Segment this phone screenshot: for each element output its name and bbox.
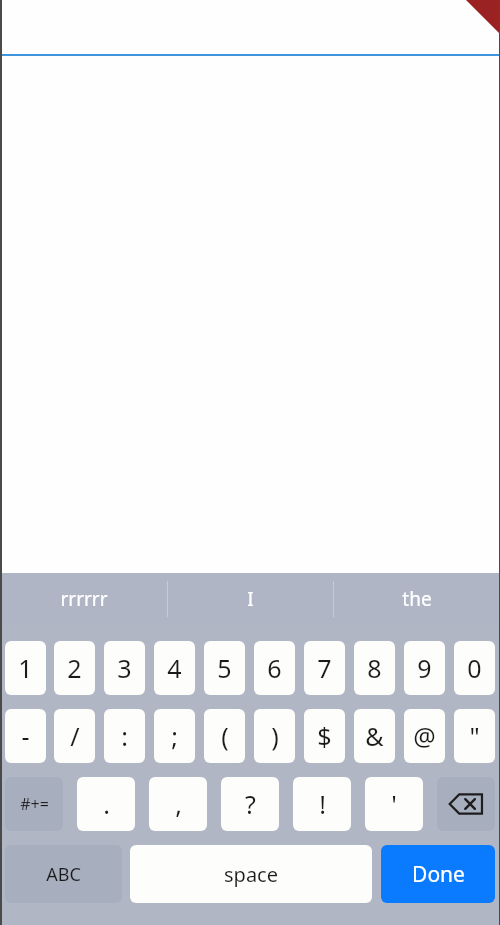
- button[interactable]: 6: [254, 641, 295, 695]
- staticText: -: [21, 719, 30, 753]
- button[interactable]: space: [130, 845, 372, 903]
- staticText: 2: [67, 651, 82, 685]
- button[interactable]: ABC: [5, 845, 122, 903]
- staticText: :: [121, 719, 128, 753]
- staticText: 3: [117, 651, 132, 685]
- staticText: 0: [467, 651, 482, 685]
- staticText: $: [317, 719, 332, 753]
- button[interactable]: 4: [154, 641, 195, 695]
- button[interactable]: (: [204, 709, 245, 763]
- button[interactable]: Done: [381, 845, 495, 903]
- button[interactable]: &: [354, 709, 395, 763]
- staticText: ;: [171, 719, 178, 753]
- staticText: .: [103, 787, 110, 821]
- staticText: the: [402, 586, 432, 612]
- staticText: ': [391, 787, 397, 821]
- button[interactable]: 5: [204, 641, 245, 695]
- button[interactable]: -: [5, 709, 46, 763]
- button[interactable]: 3: [104, 641, 145, 695]
- button[interactable]: I: [168, 573, 333, 625]
- staticText: 6: [267, 651, 282, 685]
- staticText: 1: [18, 651, 33, 685]
- button[interactable]: ;: [154, 709, 195, 763]
- button[interactable]: 1: [5, 641, 46, 695]
- button[interactable]: the: [334, 573, 500, 625]
- staticText: ABC: [46, 862, 81, 887]
- button[interactable]: /: [54, 709, 95, 763]
- staticText: (: [221, 719, 229, 753]
- button[interactable]: ?: [221, 777, 279, 831]
- button[interactable]: $: [304, 709, 345, 763]
- button[interactable]: 9: [404, 641, 445, 695]
- button[interactable]: ': [365, 777, 423, 831]
- staticText: 4: [167, 651, 182, 685]
- button[interactable]: #+=: [5, 777, 63, 831]
- staticText: ?: [245, 787, 256, 821]
- button[interactable]: 7: [304, 641, 345, 695]
- button[interactable]: .: [77, 777, 135, 831]
- button[interactable]: Backspace: [437, 777, 495, 831]
- staticText: !: [319, 787, 326, 821]
- staticText: 8: [367, 651, 382, 685]
- button[interactable]: 2: [54, 641, 95, 695]
- staticText: rrrrrr: [60, 586, 108, 612]
- button[interactable]: !: [293, 777, 351, 831]
- button[interactable]: 0: [454, 641, 495, 695]
- button[interactable]: rrrrrr: [0, 573, 167, 625]
- staticText: #+=: [20, 793, 49, 815]
- staticText: Done: [412, 860, 465, 889]
- staticText: /: [70, 719, 80, 753]
- staticText: space: [224, 861, 278, 888]
- staticText: &: [365, 719, 384, 753]
- staticText: ,: [175, 787, 182, 821]
- button[interactable]: ): [254, 709, 295, 763]
- staticText: 7: [317, 651, 332, 685]
- staticText: 5: [217, 651, 232, 685]
- button[interactable]: 8: [354, 641, 395, 695]
- staticText: I: [247, 586, 254, 612]
- button[interactable]: @: [404, 709, 445, 763]
- staticText: 9: [417, 651, 432, 685]
- button[interactable]: ": [454, 709, 495, 763]
- staticText: ": [469, 719, 480, 753]
- button[interactable]: :: [104, 709, 145, 763]
- staticText: @: [413, 719, 436, 753]
- staticText: ): [271, 719, 279, 753]
- button[interactable]: ,: [149, 777, 207, 831]
